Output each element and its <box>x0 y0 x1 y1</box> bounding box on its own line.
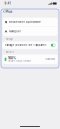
button[interactable]: Plus <box>3 9 13 13</box>
staticText: 100% <box>8 56 16 60</box>
button[interactable]: Partage position de l'appareil <box>2 41 58 49</box>
button[interactable]: Rechercher à proximité <box>2 18 58 26</box>
staticText: Dernière charge complète <box>8 60 31 62</box>
staticText: Naviguer <box>9 30 21 33</box>
staticText: Plus <box>6 9 13 13</box>
staticText: Partage position de l'appareil <box>5 44 47 47</box>
staticText: Rechercher à proximité <box>9 20 41 24</box>
button[interactable]: Naviguer <box>2 27 58 36</box>
staticText: Maintenant <box>45 58 55 60</box>
staticText: 9:41 <box>5 2 11 5</box>
staticText: Partage <box>6 38 13 40</box>
staticText: Batterie <box>6 51 14 54</box>
